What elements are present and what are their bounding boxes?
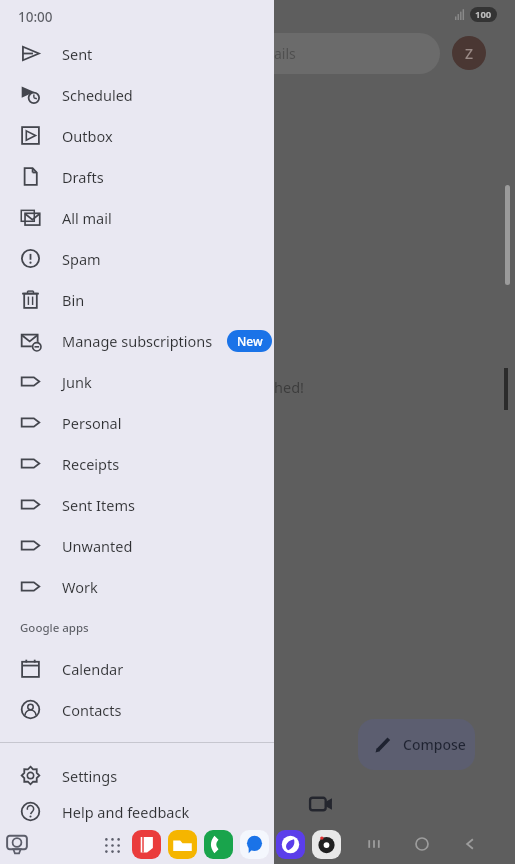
staticText: New: [237, 333, 263, 349]
staticText: Unwanted: [62, 536, 133, 556]
button[interactable]: Scheduled: [0, 74, 274, 115]
staticText: Sent: [62, 44, 93, 64]
button[interactable]: All mail: [0, 197, 274, 238]
button[interactable]: Receipts: [0, 443, 274, 484]
staticText: Scheduled: [62, 85, 133, 105]
button[interactable]: App: [132, 830, 161, 859]
staticText: Z: [465, 44, 474, 63]
button[interactable]: Bin: [0, 279, 274, 320]
button[interactable]: App: [312, 830, 341, 859]
button[interactable]: Junk: [0, 361, 274, 402]
staticText: All mail: [62, 208, 112, 228]
button[interactable]: Drafts: [0, 156, 274, 197]
staticText: hed!: [274, 377, 304, 397]
button[interactable]: Account: [452, 36, 486, 70]
staticText: Outbox: [62, 126, 113, 146]
button[interactable]: Spam: [0, 238, 274, 279]
staticText: Receipts: [62, 454, 120, 474]
staticText: Junk: [62, 372, 92, 392]
staticText: Contacts: [62, 700, 122, 720]
button[interactable]: Outbox: [0, 115, 274, 156]
staticText: Settings: [62, 766, 118, 786]
button[interactable]: All apps: [104, 837, 121, 854]
button[interactable]: Meet: [308, 791, 334, 817]
staticText: Work: [62, 577, 98, 597]
button[interactable]: App: [168, 830, 197, 859]
staticText: Sent Items: [62, 495, 135, 515]
button[interactable]: Manage subscriptions: [0, 320, 274, 361]
staticText: 10:00: [18, 8, 53, 26]
staticText: Personal: [62, 413, 122, 433]
button[interactable]: Personal: [0, 402, 274, 443]
staticText: Help and feedback: [62, 802, 190, 822]
button[interactable]: ails: [250, 33, 440, 74]
staticText: 100: [475, 8, 492, 21]
button[interactable]: Home: [410, 832, 434, 856]
staticText: Drafts: [62, 167, 104, 187]
button[interactable]: Sent Items: [0, 484, 274, 525]
staticText: Spam: [62, 249, 101, 269]
button[interactable]: Settings: [0, 755, 274, 796]
button[interactable]: App: [204, 830, 233, 859]
staticText: Manage subscriptions: [62, 331, 213, 351]
button[interactable]: Calendar: [0, 648, 274, 689]
button[interactable]: Unwanted: [0, 525, 274, 566]
button[interactable]: Sent: [0, 33, 274, 74]
button[interactable]: Help and feedback: [0, 796, 274, 827]
staticText: Calendar: [62, 659, 124, 679]
button[interactable]: Recent apps: [362, 832, 386, 856]
button[interactable]: Recents: [4, 831, 30, 857]
button[interactable]: Contacts: [0, 689, 274, 730]
button[interactable]: App: [276, 830, 305, 859]
button[interactable]: Back: [458, 832, 482, 856]
staticText: ails: [274, 44, 296, 63]
button[interactable]: Compose: [358, 719, 475, 770]
button[interactable]: Work: [0, 566, 274, 607]
staticText: Bin: [62, 290, 85, 310]
staticText: Compose: [403, 735, 466, 754]
button[interactable]: App: [240, 830, 269, 859]
staticText: Google apps: [20, 620, 89, 636]
